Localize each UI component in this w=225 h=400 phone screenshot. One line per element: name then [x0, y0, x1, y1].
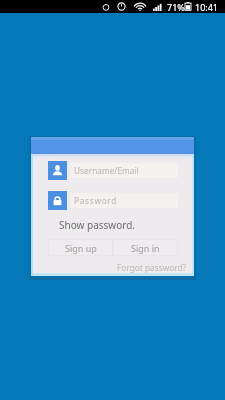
other: Wi-Fi	[134, 3, 146, 11]
staticText: Forgot password?	[117, 262, 187, 273]
staticText: Show password.	[59, 218, 135, 232]
staticText: Username/Email	[74, 165, 139, 176]
button[interactable]: Password	[48, 191, 67, 210]
button[interactable]: Username/Email	[70, 163, 178, 178]
button[interactable]: Username	[48, 161, 67, 180]
other: Signal	[153, 3, 162, 11]
staticText: 71%	[167, 1, 185, 13]
button[interactable]: Password	[70, 193, 178, 208]
staticText: Sign up	[65, 242, 97, 254]
button[interactable]: Sign in	[113, 239, 178, 256]
other: Clock	[117, 2, 126, 11]
button[interactable]: Show password.	[59, 217, 135, 233]
other: Battery	[185, 2, 191, 11]
button[interactable]: Sign up	[48, 239, 113, 256]
staticText: Password	[74, 195, 118, 206]
other: Alarm	[102, 3, 110, 11]
staticText: Sign in	[131, 242, 160, 254]
button[interactable]: Forgot password?	[95, 259, 187, 275]
staticText: 10:41	[195, 1, 219, 13]
